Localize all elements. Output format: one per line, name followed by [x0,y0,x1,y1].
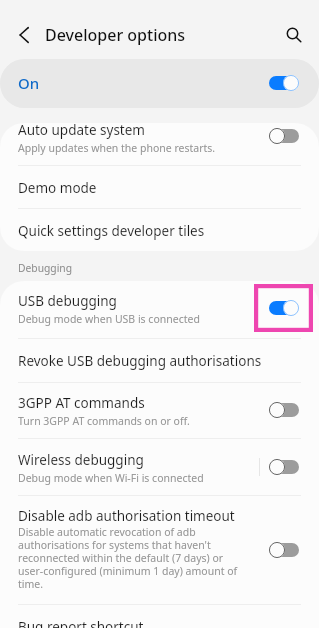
button[interactable]: Auto update system [0,123,319,165]
button[interactable]: Auto update system [269,128,299,144]
staticText: Turn 3GPP AT commands on or off. [18,414,243,428]
button[interactable]: On [0,59,319,108]
button[interactable]: Developer options on [269,75,299,91]
staticText: Developer options [45,24,186,46]
staticText: Apply updates when the phone restarts. [18,141,243,155]
button[interactable]: Wireless debugging [0,439,319,495]
staticText: USB debugging [18,292,117,310]
button[interactable]: Search [279,17,309,47]
staticText: Auto update system [18,123,145,139]
staticText: Debugging [18,261,73,275]
button[interactable]: Quick settings developer tiles [0,209,319,251]
button[interactable]: Back [9,17,39,43]
button[interactable]: 3GPP AT commands [269,402,299,418]
staticText: Debug mode when Wi-Fi is connected [18,471,243,485]
staticText: On [18,73,40,93]
button[interactable]: Wireless debugging [269,459,299,475]
button[interactable]: Bug report shortcut [0,605,319,628]
button[interactable]: Revoke USB debugging authorisations [0,339,319,382]
button[interactable]: Disable adb authorisation timeout [269,542,299,558]
staticText: Quick settings developer tiles [18,222,205,240]
staticText: Disable adb authorisation timeout [18,507,235,525]
staticText: 3GPP AT commands [18,394,145,412]
button[interactable]: USB debugging [269,300,299,316]
button[interactable]: USB debugging [0,281,319,338]
button[interactable]: Demo mode [0,166,319,208]
button[interactable]: 3GPP AT commands [0,383,319,438]
button[interactable]: Disable adb authorisation timeout [0,496,319,604]
staticText: Demo mode [18,179,97,197]
staticText: Bug report shortcut [18,618,144,628]
staticText: Debug mode when USB is connected [18,312,243,326]
staticText: Wireless debugging [18,451,144,469]
staticText: Disable automatic revocation of adb auth… [18,525,243,591]
staticText: Revoke USB debugging authorisations [18,352,262,370]
